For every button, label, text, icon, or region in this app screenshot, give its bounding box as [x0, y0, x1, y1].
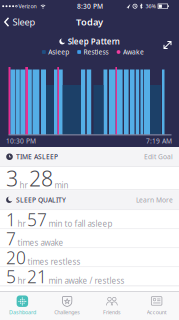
- staticText: hr: [17, 275, 25, 286]
- staticText: Account: [147, 309, 167, 316]
- staticText: Today: [76, 16, 103, 28]
- staticText: Challenges: [54, 309, 80, 316]
- staticText: 20: [6, 246, 26, 269]
- staticText: Sleep: [12, 16, 35, 28]
- staticText: Awake: [123, 48, 144, 56]
- staticText: min to fall asleep: [48, 218, 112, 229]
- staticText: Friends: [103, 309, 121, 316]
- staticText: Dashboard: [9, 309, 36, 316]
- staticText: Asleep: [48, 48, 69, 56]
- staticText: 8:30 PM: [77, 2, 103, 11]
- staticText: Learn More: [136, 195, 173, 204]
- button[interactable]: Dashboard: [0, 291, 45, 320]
- staticText: TIME ASLEEP: [16, 152, 58, 161]
- button[interactable]: Challenges: [45, 291, 90, 320]
- staticText: times awake: [17, 237, 63, 248]
- staticText: 7:19 AM: [146, 137, 172, 145]
- button[interactable]: Expand chart: [163, 40, 172, 49]
- staticText: times restless: [27, 256, 80, 267]
- staticText: Edit Goal: [144, 152, 173, 161]
- staticText: 36%: [145, 3, 155, 10]
- staticText: 28: [29, 164, 53, 192]
- staticText: 3: [6, 164, 18, 192]
- button[interactable]: Account: [134, 291, 179, 320]
- button[interactable]: Edit Goal: [144, 152, 173, 161]
- staticText: min: [54, 180, 68, 190]
- button[interactable]: Friends: [89, 291, 134, 320]
- staticText: hr: [19, 180, 27, 190]
- staticText: 57: [27, 208, 47, 231]
- staticText: SLEEP QUALITY: [16, 195, 66, 204]
- staticText: 7: [6, 227, 16, 250]
- staticText: min awake / restless: [48, 275, 124, 286]
- staticText: Restless: [83, 48, 108, 56]
- staticText: Sleep Pattern: [68, 36, 120, 47]
- staticText: 1: [6, 208, 16, 231]
- staticText: hr: [17, 218, 25, 229]
- button[interactable]: Learn More: [136, 195, 173, 204]
- staticText: 10:30 PM: [6, 137, 36, 145]
- staticText: 5: [6, 265, 16, 288]
- button[interactable]: Back: [0, 12, 35, 32]
- staticText: 21: [27, 265, 47, 288]
- staticText: Verizon: [18, 3, 36, 10]
